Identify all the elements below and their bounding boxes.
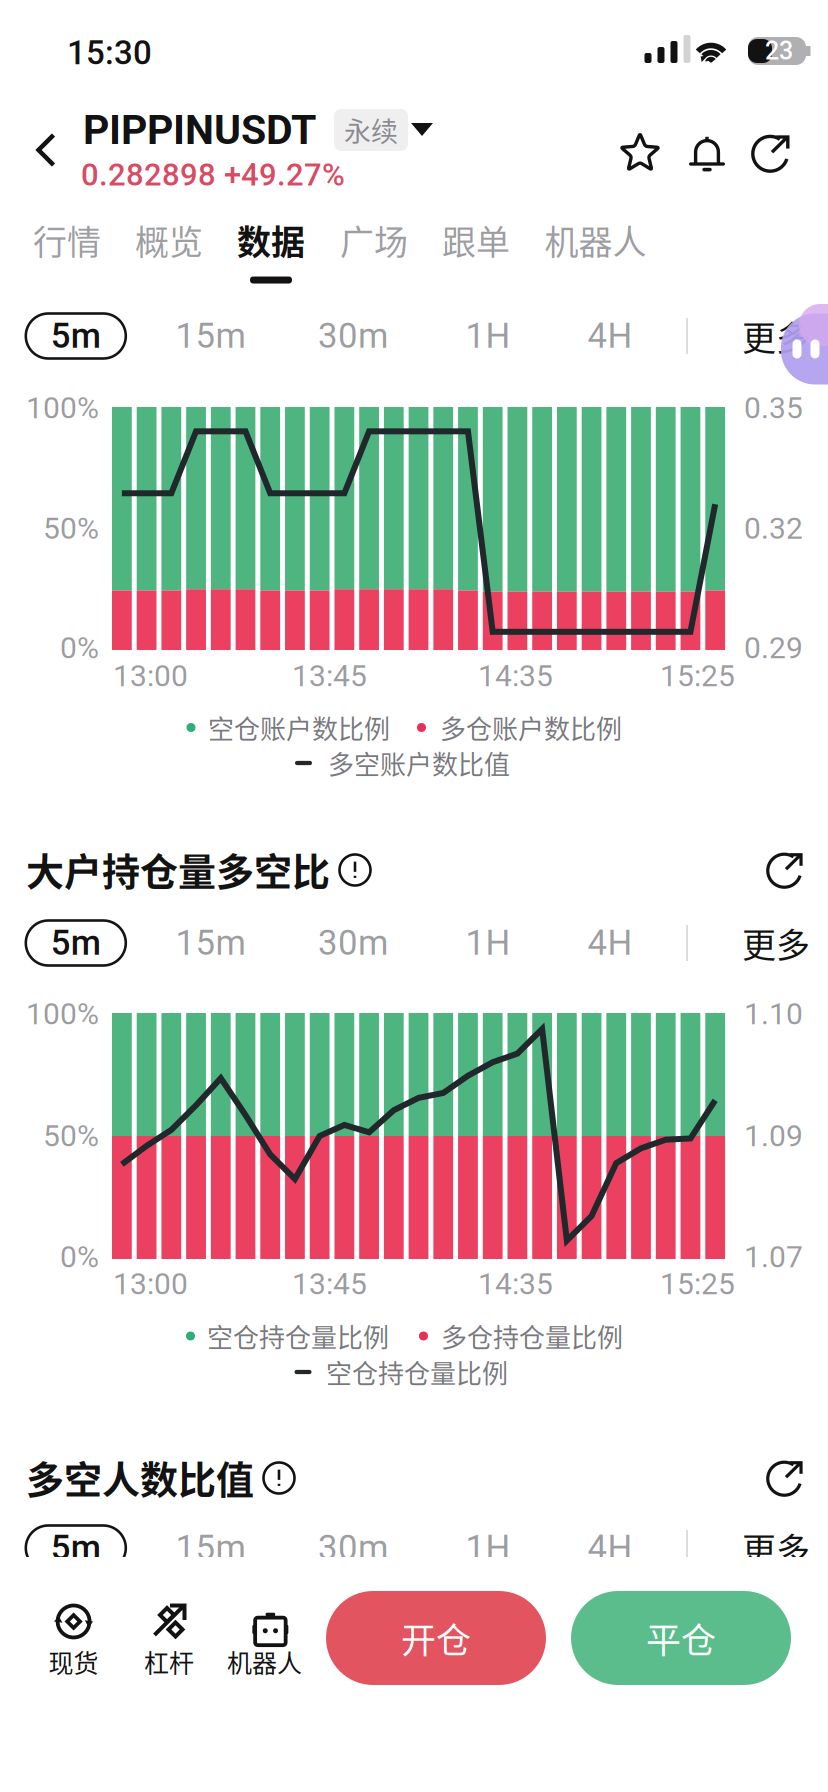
- button[interactable]: Favorite: [0, 0, 828, 1792]
- button[interactable]: Share: [0, 0, 828, 1792]
- staticText: 4H: [587, 1528, 632, 1568]
- staticText: 多仓账户数比例: [440, 709, 622, 746]
- staticText: 50%: [43, 511, 99, 546]
- button[interactable]: 30m: [0, 0, 828, 1792]
- button[interactable]: 机器人: [0, 0, 828, 1792]
- button[interactable]: Open detail: [0, 0, 828, 1792]
- button[interactable]: 更多: [0, 0, 828, 1792]
- staticText: 1.09: [744, 1118, 803, 1154]
- button[interactable]: 5m: [0, 0, 828, 1792]
- button[interactable]: 更多: [0, 0, 828, 1792]
- button[interactable]: 30m: [0, 0, 828, 1792]
- staticText: 4H: [587, 923, 632, 963]
- staticText: 15:30: [67, 34, 152, 72]
- button[interactable]: 5m: [0, 0, 828, 1792]
- staticText: 15:25: [660, 658, 735, 694]
- button[interactable]: 杠杆: [0, 0, 828, 1792]
- staticText: 空仓持仓量比例: [326, 1353, 508, 1391]
- staticText: 开仓: [401, 1613, 471, 1663]
- staticText: 多仓持仓量比例: [441, 1317, 623, 1355]
- staticText: 4H: [587, 316, 632, 356]
- staticText: 30m: [318, 1528, 388, 1568]
- staticText: 5m: [51, 316, 101, 356]
- staticText: 14:35: [478, 658, 553, 694]
- staticText: 机器人: [227, 1643, 302, 1680]
- staticText: 50%: [43, 1118, 99, 1154]
- button[interactable]: 概览: [0, 0, 828, 1792]
- staticText: 100%: [26, 996, 99, 1032]
- button[interactable]: 5m: [0, 0, 828, 1792]
- staticText: 现货: [49, 1643, 99, 1680]
- staticText: 广场: [340, 215, 408, 265]
- button[interactable]: 4H: [0, 0, 828, 1792]
- staticText: 0%: [60, 630, 99, 666]
- staticText: 0%: [60, 1239, 99, 1275]
- staticText: 13:00: [113, 658, 188, 694]
- staticText: 杠杆: [144, 1643, 194, 1680]
- button[interactable]: 1H: [0, 0, 828, 1792]
- staticText: PIPPINUSDT: [83, 106, 316, 154]
- button[interactable]: 4H: [0, 0, 828, 1792]
- staticText: 15m: [175, 923, 245, 963]
- staticText: 15:25: [660, 1266, 735, 1302]
- button[interactable]: 平仓: [0, 0, 828, 1792]
- button[interactable]: 现货: [0, 0, 828, 1792]
- button[interactable]: 开仓: [0, 0, 828, 1792]
- button[interactable]: 15m: [0, 0, 828, 1792]
- button[interactable]: Open detail: [0, 0, 828, 1792]
- button[interactable]: AI assistant: [0, 0, 100, 100]
- staticText: 30m: [318, 923, 388, 963]
- staticText: 15m: [175, 316, 245, 356]
- staticText: 多空人数比值: [26, 1449, 254, 1504]
- staticText: 1H: [465, 1528, 510, 1568]
- staticText: 数据: [237, 215, 305, 265]
- button[interactable]: 30m: [0, 0, 828, 1792]
- staticText: 13:00: [113, 1266, 188, 1302]
- staticText: 1.07: [744, 1239, 803, 1275]
- staticText: 0.35: [744, 390, 803, 426]
- button[interactable]: 15m: [0, 0, 828, 1792]
- button[interactable]: 更多: [0, 0, 828, 1792]
- staticText: 5m: [51, 923, 101, 963]
- button[interactable]: 永续: [0, 0, 828, 1792]
- staticText: 1.10: [744, 996, 803, 1032]
- staticText: 机器人: [544, 215, 646, 265]
- staticText: 永续: [344, 110, 398, 150]
- staticText: 概览: [135, 215, 203, 265]
- staticText: 行情: [33, 215, 101, 265]
- staticText: 15m: [175, 1528, 245, 1568]
- staticText: 平仓: [646, 1613, 716, 1663]
- button[interactable]: 1H: [0, 0, 828, 1792]
- staticText: 0.29: [744, 630, 803, 666]
- staticText: 更多: [742, 311, 810, 361]
- staticText: 100%: [26, 390, 99, 426]
- staticText: 14:35: [478, 1266, 553, 1302]
- button[interactable]: Price alert: [0, 0, 828, 1792]
- button[interactable]: 4H: [0, 0, 828, 1792]
- staticText: 空仓持仓量比例: [207, 1317, 389, 1355]
- button[interactable]: 机器人: [0, 0, 828, 1792]
- staticText: 1H: [465, 923, 510, 963]
- staticText: 0.32: [744, 511, 803, 546]
- staticText: 跟单: [442, 215, 510, 265]
- staticText: 30m: [318, 316, 388, 356]
- staticText: 13:45: [292, 658, 367, 694]
- button[interactable]: 跟单: [0, 0, 828, 1792]
- staticText: 多空账户数比值: [328, 744, 510, 782]
- staticText: 更多: [742, 918, 810, 968]
- staticText: 0.282898 +49.27%: [81, 157, 345, 193]
- staticText: 1H: [465, 316, 510, 356]
- staticText: 5m: [51, 1528, 101, 1568]
- staticText: 更多: [742, 1523, 810, 1573]
- button[interactable]: 1H: [0, 0, 828, 1792]
- staticText: 13:45: [292, 1266, 367, 1302]
- staticText: 空仓账户数比例: [208, 709, 390, 746]
- button[interactable]: 广场: [0, 0, 828, 1792]
- button[interactable]: 行情: [0, 0, 828, 1792]
- staticText: 大户持仓量多空比: [26, 841, 330, 896]
- button[interactable]: 15m: [0, 0, 828, 1792]
- button[interactable]: Back: [0, 0, 828, 1792]
- staticText: 23: [765, 36, 793, 66]
- button[interactable]: 数据: [0, 0, 828, 1792]
